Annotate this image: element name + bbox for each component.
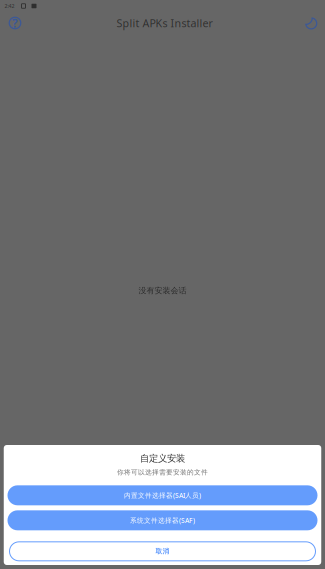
staticText: 自定义安装 xyxy=(140,453,185,464)
button[interactable]: Help xyxy=(2,12,28,34)
staticText: 2:42 xyxy=(4,2,14,10)
button[interactable]: 系统文件选择器(SAF) xyxy=(7,510,317,530)
staticText: 你将可以选择需要安装的文件 xyxy=(117,468,208,476)
button[interactable]: 内置文件选择器(SAI人员) xyxy=(7,485,317,505)
staticText: 取消 xyxy=(155,547,169,555)
staticText: 内置文件选择器(SAI人员) xyxy=(124,491,201,500)
staticText: 系统文件选择器(SAF) xyxy=(130,516,195,525)
button[interactable]: 取消 xyxy=(9,542,315,561)
staticText: 没有安装会话 xyxy=(138,286,186,295)
staticText: ? xyxy=(12,15,18,31)
staticText: Split APKs Installer xyxy=(116,16,212,30)
button[interactable]: Toggle dark mode xyxy=(299,12,323,34)
